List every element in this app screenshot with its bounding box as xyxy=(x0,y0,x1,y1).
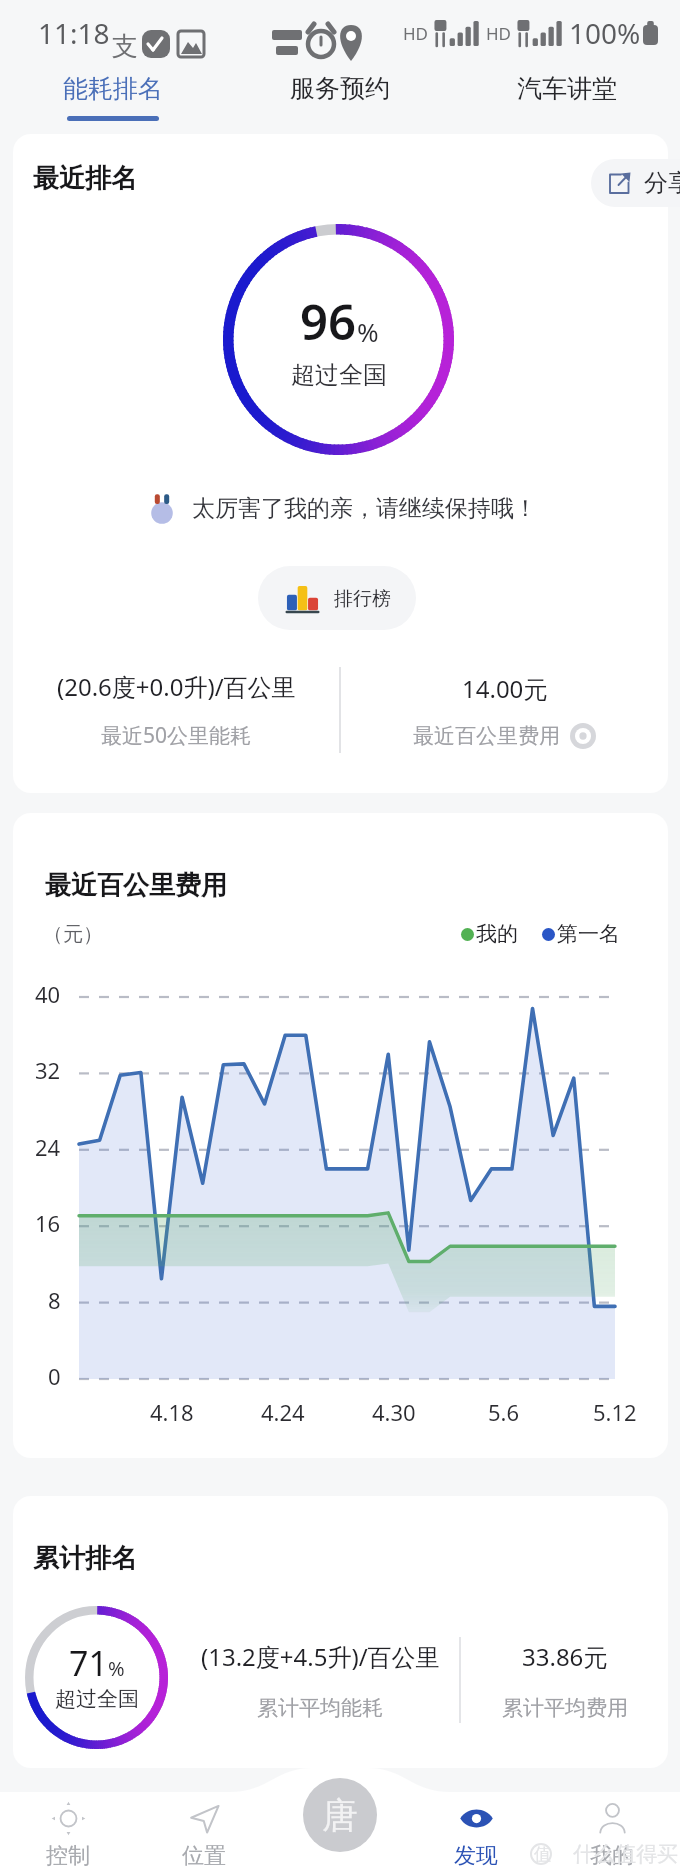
staticText: 40 xyxy=(35,979,61,1009)
button[interactable]: 服务预约 xyxy=(226,66,453,128)
button[interactable]: Home xyxy=(303,1778,377,1852)
staticText: 超过全国 xyxy=(55,1686,139,1712)
button[interactable]: 控制 xyxy=(0,1792,136,1874)
staticText: 值 xyxy=(534,1844,551,1865)
staticText: (13.2度+4.5升)/百公里 xyxy=(201,1640,440,1673)
button[interactable]: 14.00元 xyxy=(341,655,668,765)
staticText: 排行榜 xyxy=(334,587,391,611)
staticText: 最近50公里能耗 xyxy=(101,721,252,750)
staticText: 太厉害了我的亲，请继续保持哦！ xyxy=(192,494,537,523)
staticText: % xyxy=(357,314,379,349)
button[interactable]: 位置 xyxy=(136,1792,272,1874)
staticText: 4.30 xyxy=(372,1397,416,1427)
staticText: 32 xyxy=(35,1055,61,1085)
staticText: 16 xyxy=(35,1208,61,1238)
staticText: 控制 xyxy=(46,1842,90,1870)
staticText: 累计平均费用 xyxy=(502,1695,628,1721)
staticText: 4.24 xyxy=(261,1397,305,1427)
staticText: 我的 xyxy=(590,1842,634,1870)
staticText: 14.00元 xyxy=(462,672,548,705)
staticText: 96 xyxy=(300,288,357,355)
staticText: 累计排名 xyxy=(33,1542,137,1575)
staticText: 唐 xyxy=(322,1793,358,1838)
staticText: 24 xyxy=(35,1132,61,1162)
staticText: 分享 xyxy=(644,168,680,198)
staticText: 33.86元 xyxy=(522,1640,608,1673)
staticText: HD xyxy=(403,22,429,45)
staticText: 最近百公里费用 xyxy=(413,723,560,749)
staticText: 能耗排名 xyxy=(63,73,163,104)
staticText: 累计平均能耗 xyxy=(257,1695,383,1721)
staticText: 5.6 xyxy=(488,1397,520,1427)
staticText: 71 xyxy=(69,1640,108,1686)
staticText: 我的 xyxy=(476,921,518,947)
button[interactable]: 发现 xyxy=(408,1792,544,1874)
staticText: 0 xyxy=(48,1361,61,1391)
staticText: 5.12 xyxy=(593,1397,637,1427)
staticText: 位置 xyxy=(182,1842,226,1870)
button[interactable]: 分享 xyxy=(591,159,680,207)
staticText: 第一名 xyxy=(557,921,620,947)
staticText: 4.18 xyxy=(150,1397,194,1427)
button[interactable]: 能耗排名 xyxy=(0,66,226,128)
staticText: % xyxy=(108,1655,125,1682)
staticText: 超过全国 xyxy=(291,360,387,390)
button[interactable]: 排行榜 xyxy=(258,566,416,630)
staticText: 服务预约 xyxy=(290,73,390,104)
staticText: 最近排名 xyxy=(33,162,137,195)
staticText: 汽车讲堂 xyxy=(517,73,617,104)
staticText: （元） xyxy=(43,922,103,947)
button[interactable]: 汽车讲堂 xyxy=(453,66,680,128)
staticText: 什么值得买 xyxy=(573,1841,678,1867)
staticText: 发现 xyxy=(454,1842,498,1870)
staticText: (20.6度+0.0升)/百公里 xyxy=(57,670,296,703)
staticText: 11:18 xyxy=(38,14,110,52)
staticText: 8 xyxy=(48,1285,61,1315)
staticText: 支 xyxy=(112,30,138,63)
button[interactable]: 我的 xyxy=(544,1792,680,1874)
staticText: 最近百公里费用 xyxy=(45,869,227,902)
button[interactable]: (20.6度+0.0升)/百公里 xyxy=(13,655,339,765)
staticText: 100% xyxy=(569,14,641,52)
staticText: HD xyxy=(486,22,512,45)
